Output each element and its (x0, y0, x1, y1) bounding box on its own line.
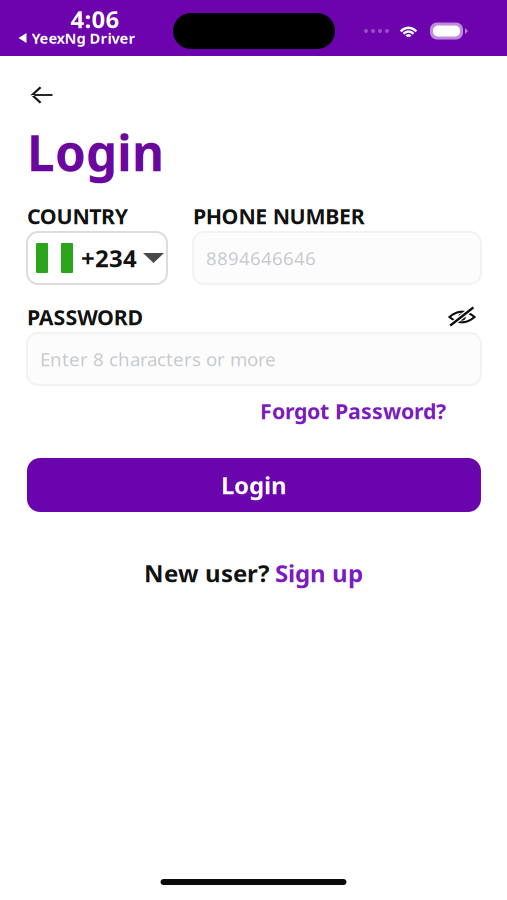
staticText: PHONE NUMBER (193, 202, 365, 230)
staticText: 8894646646 (206, 246, 316, 270)
button[interactable]: Login (27, 458, 481, 512)
staticText: +234 (81, 242, 137, 274)
button[interactable]: Forgot Password? (260, 397, 446, 425)
staticText: PASSWORD (27, 303, 144, 331)
button[interactable]: +234 (27, 232, 167, 284)
button[interactable]: Back (16, 73, 68, 117)
staticText: COUNTRY (27, 202, 128, 230)
staticText: Sign up (275, 557, 363, 589)
staticText: Forgot Password? (260, 397, 446, 425)
staticText: Login (27, 119, 164, 185)
staticText: New user? (144, 557, 275, 589)
button[interactable]: Sign up (275, 557, 363, 589)
staticText: Enter 8 characters or more (40, 347, 276, 371)
staticText: Login (221, 469, 287, 501)
staticText: YeexNg Driver (31, 28, 135, 48)
button[interactable]: Show password (441, 299, 483, 335)
staticText: 4:06 (70, 3, 119, 35)
